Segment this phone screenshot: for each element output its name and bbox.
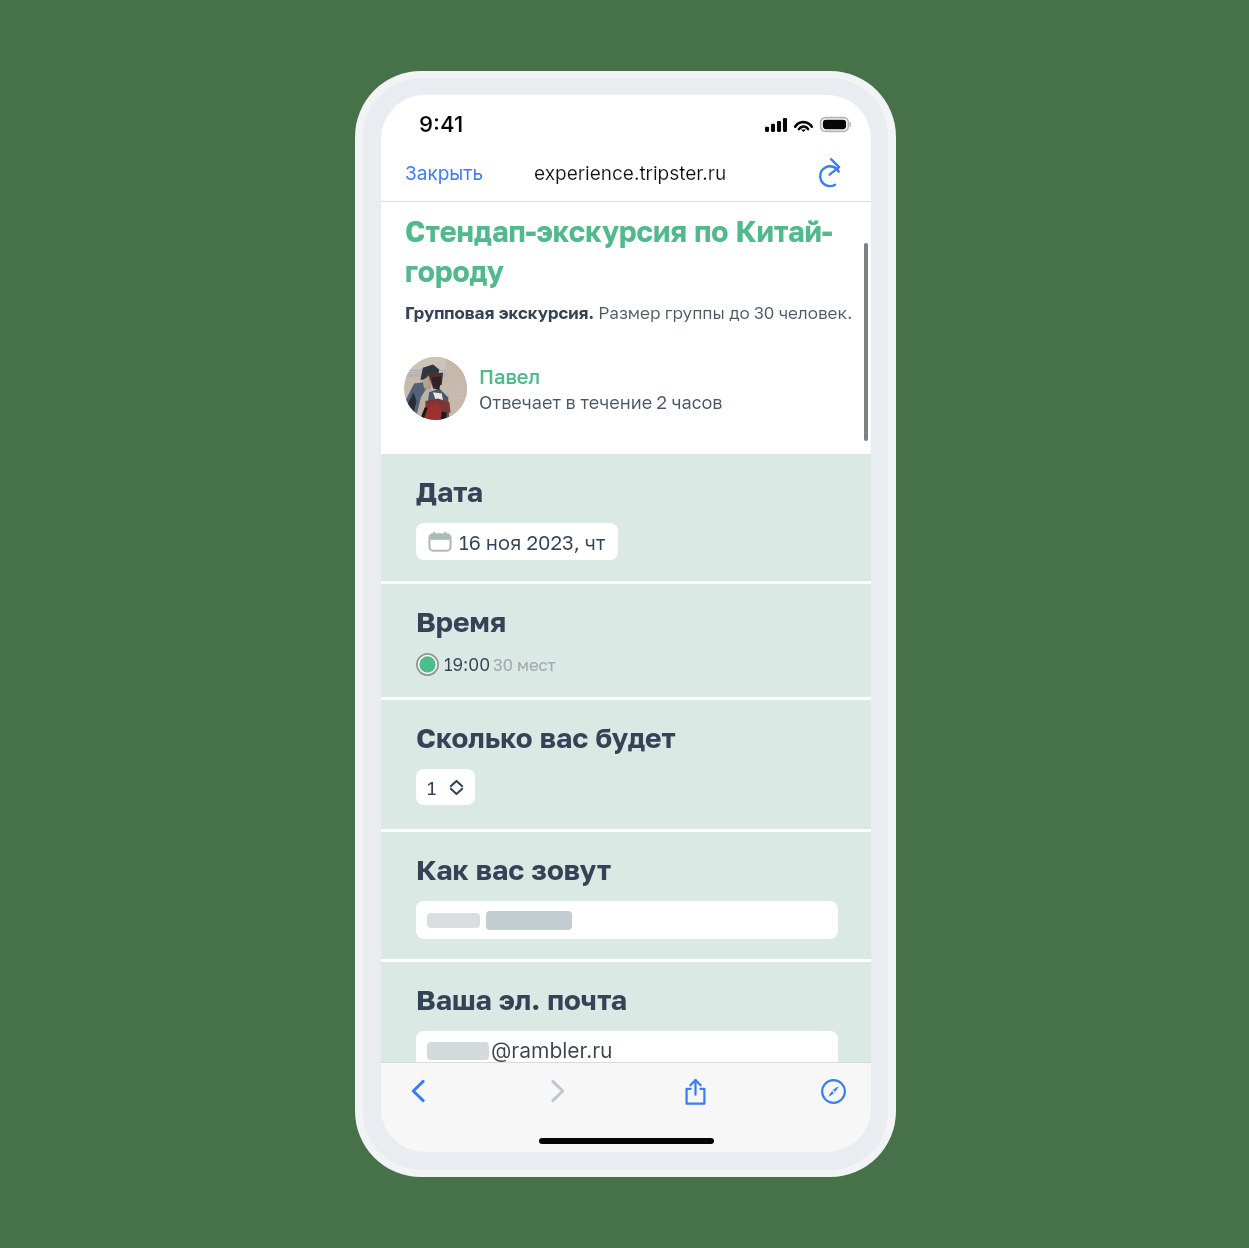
staticText: 16 ноя 2023, чт: [459, 530, 606, 554]
staticText: 30 мест: [493, 655, 556, 675]
button[interactable]: 19:00: [416, 653, 556, 676]
staticText: @rambler.ru: [491, 1038, 613, 1063]
staticText: Отвечает в течение 2 часов: [479, 391, 723, 413]
button[interactable]: Back: [396, 1068, 442, 1114]
staticText: Время: [416, 605, 507, 639]
button[interactable]: [416, 901, 838, 939]
staticText: experience.tripster.ru: [534, 162, 727, 185]
button[interactable]: Share: [672, 1068, 718, 1114]
staticText: Как вас зовут: [416, 853, 612, 887]
staticText: Ваша эл. почта: [416, 983, 628, 1017]
staticText: Групповая экскурсия. Размер группы до 30…: [405, 302, 853, 322]
button[interactable]: 16 ноя 2023, чт: [416, 523, 618, 560]
button[interactable]: Forward: [534, 1068, 580, 1114]
staticText: 19:00: [444, 654, 491, 675]
button[interactable]: @rambler.ru: [416, 1031, 838, 1069]
staticText: 1: [427, 776, 437, 799]
button[interactable]: Reload page: [813, 157, 847, 191]
button[interactable]: 1: [416, 769, 475, 805]
staticText: Павел: [479, 364, 540, 388]
button[interactable]: Bookmarks: [810, 1068, 856, 1114]
staticText: Сколько вас будет: [416, 721, 676, 755]
button[interactable]: Закрыть: [397, 154, 492, 193]
staticText: 9:41: [419, 111, 464, 138]
staticText: Дата: [416, 475, 484, 509]
button[interactable]: Павел: [404, 357, 723, 420]
staticText: Закрыть: [405, 162, 484, 185]
staticText: Стендап-экскурсия по Китай-городу: [405, 214, 859, 288]
